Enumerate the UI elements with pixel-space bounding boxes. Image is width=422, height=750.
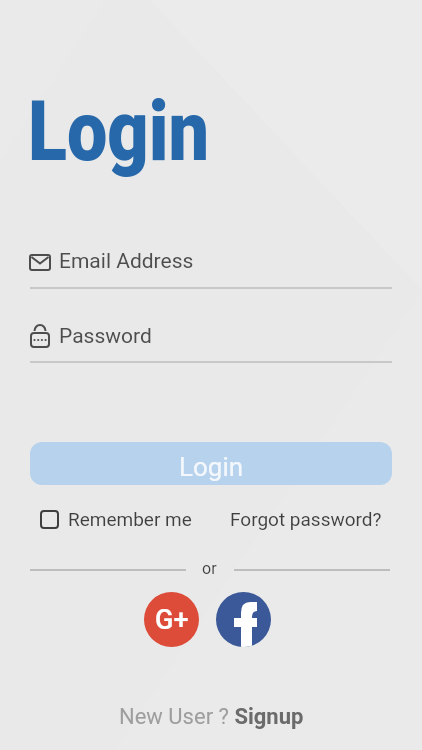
button[interactable] [30,242,392,289]
staticText: G+ [155,604,189,636]
staticText: Login [28,82,209,180]
staticText: Login [179,452,244,482]
staticText: New User ? Signup [119,704,304,730]
staticText: or [202,559,217,578]
button[interactable]: Remember me [41,508,192,530]
button[interactable]: Forgot password? [230,508,382,530]
button[interactable] [216,592,271,647]
staticText: Email Address [59,249,194,274]
staticText: Remember me [68,508,192,530]
button[interactable]: New User ? Signup [119,704,304,730]
staticText: Password [59,324,152,349]
button[interactable]: Login [30,442,392,485]
button[interactable]: G+ [144,592,199,647]
button[interactable] [30,316,392,363]
